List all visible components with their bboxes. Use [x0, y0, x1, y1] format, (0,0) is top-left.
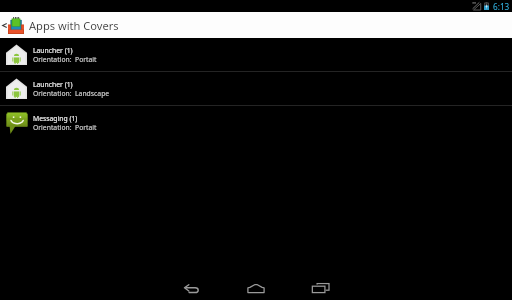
button[interactable]: Launcher (1) — [0, 38, 512, 71]
staticText: Launcher (1) — [33, 80, 73, 89]
staticText: Apps with Covers — [29, 18, 119, 33]
staticText: 6:13 — [493, 1, 510, 12]
button[interactable]: Home — [232, 273, 280, 293]
staticText: Messaging (1) — [33, 114, 78, 123]
staticText: Orientation: Landscape — [33, 89, 110, 98]
staticText: Orientation: Portait — [33, 123, 97, 132]
staticText: Orientation: Portait — [33, 55, 97, 64]
button[interactable]: Recent apps — [296, 273, 344, 293]
staticText: Launcher (1) — [33, 46, 73, 55]
button[interactable]: Back — [168, 273, 216, 293]
button[interactable]: Navigate up — [0, 17, 24, 34]
button[interactable]: Launcher (1) — [0, 72, 512, 105]
button[interactable]: Messaging (1) — [0, 106, 512, 139]
